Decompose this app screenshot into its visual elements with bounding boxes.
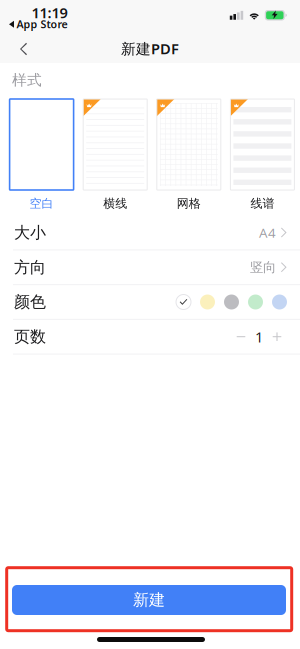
button[interactable]: 网格 [157, 99, 221, 211]
button[interactable]: 横线 [83, 99, 147, 211]
staticText: 网格 [177, 196, 201, 211]
button[interactable]: 减少页数 [231, 327, 251, 347]
staticText: A4 [259, 224, 276, 241]
staticText: 大小 [14, 223, 46, 242]
staticText: 空白 [30, 196, 54, 211]
button[interactable]: 新建 [12, 585, 286, 615]
button[interactable]: 方向 [0, 250, 300, 285]
staticText: 新建 [133, 590, 165, 610]
staticText: App Store [16, 17, 67, 31]
staticText: 11:19 [31, 3, 67, 22]
button[interactable]: 大小 [0, 216, 300, 250]
staticText: 线谱 [250, 196, 274, 211]
button[interactable]: 白色 [176, 294, 191, 309]
staticText: 样式 [12, 71, 42, 89]
button[interactable]: 页数 [0, 320, 300, 355]
button[interactable]: 灰色 [224, 294, 239, 309]
staticText: 页数 [14, 327, 46, 347]
staticText: 颜色 [14, 292, 46, 312]
staticText: 横线 [103, 196, 127, 211]
button[interactable]: 颜色 [0, 285, 300, 320]
button[interactable]: 返回 [0, 31, 44, 63]
button[interactable]: 蓝色 [272, 294, 287, 309]
button[interactable]: 米色 [200, 294, 215, 309]
staticText: 新建PDF [121, 39, 179, 58]
staticText: 1 [255, 327, 263, 346]
staticText: 竖向 [250, 259, 276, 275]
button[interactable]: 空白 [10, 99, 74, 211]
button[interactable]: 线谱 [230, 99, 294, 211]
button[interactable]: 绿色 [248, 294, 263, 309]
staticText: 方向 [14, 257, 46, 277]
button[interactable]: 增加页数 [267, 327, 287, 347]
